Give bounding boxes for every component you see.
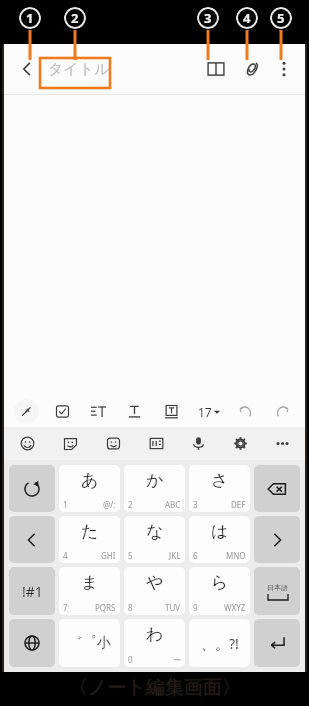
- button[interactable]: た: [59, 516, 120, 563]
- staticText: 4: [63, 550, 68, 561]
- button[interactable]: refresh: [9, 465, 55, 512]
- button[interactable]: Emoticons: [92, 427, 135, 460]
- staticText: 5: [277, 9, 285, 27]
- button[interactable]: Attach: [237, 54, 267, 84]
- staticText: 17: [198, 404, 212, 420]
- button[interactable]: 、。?!: [189, 619, 250, 667]
- button[interactable]: あ: [59, 465, 120, 512]
- staticText: 、。?!: [201, 634, 239, 653]
- staticText: DEF: [231, 499, 246, 510]
- staticText: 日本語: [267, 583, 288, 592]
- button[interactable]: ゛゜小: [59, 619, 120, 667]
- staticText: 〈ノート編集画面〉: [0, 676, 309, 700]
- staticText: 0: [128, 654, 133, 665]
- staticText: 5: [128, 550, 133, 561]
- button[interactable]: や: [124, 567, 185, 615]
- staticText: MNO: [226, 550, 246, 561]
- staticText: は: [211, 521, 229, 542]
- staticText: 4: [243, 9, 251, 27]
- staticText: や: [146, 572, 164, 593]
- staticText: 1: [26, 9, 34, 27]
- staticText: タイトル: [48, 60, 110, 79]
- staticText: 7: [63, 602, 68, 613]
- staticText: ゛゜小: [68, 634, 111, 652]
- staticText: ら: [211, 572, 229, 593]
- button[interactable]: right: [254, 516, 300, 563]
- button[interactable]: な: [124, 516, 185, 563]
- staticText: !#1: [22, 582, 43, 601]
- staticText: TUV: [165, 602, 181, 613]
- staticText: ー: [173, 655, 181, 665]
- button[interactable]: Pen: [8, 396, 44, 427]
- button[interactable]: は: [189, 516, 250, 563]
- staticText: @/:: [103, 499, 116, 510]
- staticText: PQRS: [95, 602, 116, 613]
- staticText: ま: [81, 572, 99, 593]
- staticText: 8: [128, 602, 133, 613]
- button[interactable]: Checklist: [44, 396, 80, 427]
- staticText: 2: [128, 499, 133, 510]
- button[interactable]: さ: [189, 465, 250, 512]
- staticText: JKL: [169, 550, 181, 561]
- button[interactable]: left: [9, 516, 55, 563]
- button[interactable]: space: [254, 567, 300, 615]
- staticText: 9: [193, 602, 198, 613]
- button[interactable]: enter: [254, 619, 300, 667]
- button[interactable]: globe: [9, 619, 55, 667]
- staticText: 3: [204, 9, 212, 27]
- button[interactable]: Underline: [116, 396, 153, 427]
- staticText: 1: [63, 499, 68, 510]
- staticText: わ: [146, 624, 164, 645]
- button[interactable]: Emoji: [6, 427, 49, 460]
- button[interactable]: か: [124, 465, 185, 512]
- button[interactable]: Text box: [153, 396, 190, 427]
- staticText: WXYZ: [224, 602, 246, 613]
- button[interactable]: !#1: [9, 567, 55, 615]
- button[interactable]: Settings: [219, 427, 261, 460]
- button[interactable]: Symbols: [135, 427, 177, 460]
- staticText: ABC: [165, 499, 181, 510]
- button[interactable]: More options: [269, 54, 299, 84]
- button[interactable]: Back: [10, 52, 44, 86]
- button[interactable]: Book: [201, 54, 231, 84]
- staticText: か: [146, 470, 164, 491]
- button[interactable]: タイトル: [48, 54, 138, 84]
- button[interactable]: Redo: [264, 396, 301, 427]
- staticText: さ: [211, 470, 229, 491]
- staticText: 6: [193, 550, 198, 561]
- button[interactable]: Stickers: [49, 427, 92, 460]
- button[interactable]: Voice input: [177, 427, 219, 460]
- staticText: な: [146, 521, 164, 542]
- staticText: た: [81, 521, 99, 542]
- button[interactable]: わ: [124, 619, 185, 667]
- staticText: GHI: [101, 550, 116, 561]
- staticText: あ: [81, 470, 99, 491]
- button[interactable]: ま: [59, 567, 120, 615]
- button[interactable]: More: [261, 427, 303, 460]
- staticText: 2: [71, 9, 79, 27]
- button[interactable]: del: [254, 465, 300, 512]
- button[interactable]: ら: [189, 567, 250, 615]
- button[interactable]: Indent text: [80, 396, 116, 427]
- staticText: 3: [193, 499, 198, 510]
- button[interactable]: Undo: [227, 396, 264, 427]
- button[interactable]: 17: [190, 396, 227, 427]
